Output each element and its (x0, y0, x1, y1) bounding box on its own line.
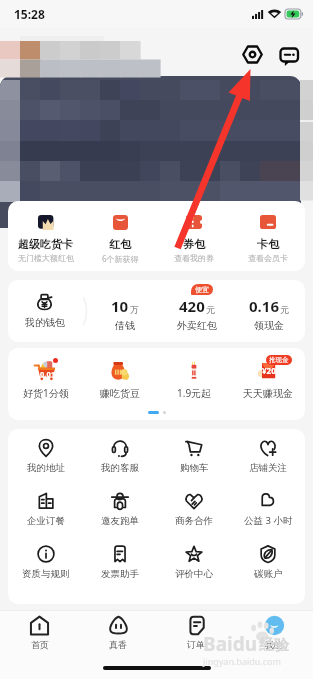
staticText: 券包 (183, 237, 205, 251)
button[interactable]: 店铺关注 (231, 429, 305, 482)
staticText: 420 (179, 296, 205, 316)
button[interactable]: 资质与规则 (8, 535, 83, 588)
staticText: 发票助手 (101, 568, 139, 580)
staticText: 0.01 (40, 369, 55, 379)
staticText: Baidu (203, 631, 258, 657)
staticText: 好货1分领 (23, 386, 69, 400)
staticText: 0.16 (249, 296, 279, 316)
button[interactable]: 购物车 (157, 429, 231, 482)
button[interactable]: 红包 (83, 201, 157, 271)
button[interactable]: 卡包 (231, 201, 305, 271)
button[interactable]: 碳账户 (231, 535, 305, 588)
staticText: 经验 (259, 636, 289, 655)
staticText: 我的 (265, 639, 283, 650)
staticText: 超级吃货卡 (18, 237, 73, 251)
staticText: jingyan.baidu.com (203, 655, 281, 667)
button[interactable]: 券包 (157, 201, 231, 271)
staticText: 元 (206, 304, 215, 315)
staticText: 天天赚现金 (243, 387, 293, 400)
staticText: 企业订餐 (27, 515, 65, 527)
button[interactable]: 我的地址 (8, 429, 83, 482)
staticText: 无门槛大额红包 (18, 253, 74, 263)
staticText: 我的客服 (101, 462, 139, 474)
staticText: 订单 (187, 639, 205, 650)
staticText: 首页 (31, 639, 49, 650)
staticText: 元 (280, 304, 289, 315)
button[interactable]: 超级吃货卡 (8, 201, 83, 271)
button[interactable]: 我的客服 (83, 429, 157, 482)
button[interactable]: 商务合作 (157, 482, 231, 535)
staticText: 6个新获得 (102, 253, 139, 264)
staticText: 卡包 (257, 237, 279, 251)
staticText: 店铺关注 (249, 462, 287, 474)
button[interactable]: Messages (277, 42, 302, 67)
button[interactable]: 首页 (0, 611, 79, 654)
button[interactable]: 420 (161, 280, 233, 342)
staticText: 评价中心 (175, 568, 213, 580)
button[interactable]: 1.9元起 (157, 348, 231, 404)
staticText: 赚吃货豆 (100, 387, 140, 400)
button[interactable]: 评价中心 (157, 535, 231, 588)
button[interactable]: 订单 (157, 611, 235, 654)
button[interactable]: 我的 (235, 611, 313, 654)
button[interactable]: 赚吃货豆 (83, 348, 157, 404)
staticText: 我的地址 (27, 462, 65, 474)
button[interactable]: 邀友跑单 (83, 482, 157, 535)
staticText: 我的钱包 (25, 316, 65, 329)
staticText: 便宜 (195, 285, 209, 294)
staticText: 查看我的券 (174, 253, 214, 263)
staticText: 真香 (109, 639, 127, 650)
button[interactable]: 发票助手 (83, 535, 157, 588)
staticText: 邀友跑单 (101, 515, 139, 527)
staticText: 购物车 (180, 462, 209, 474)
staticText: 抢现金 (269, 356, 289, 364)
button[interactable]: 公益 3 小时 (231, 482, 305, 535)
button[interactable]: 我的钱包 (8, 280, 81, 342)
button[interactable]: Settings (240, 42, 265, 67)
staticText: 15:28 (14, 6, 45, 22)
button[interactable]: 0.01 (8, 348, 83, 404)
staticText: ¥20 (262, 365, 276, 376)
staticText: 资质与规则 (22, 568, 70, 580)
staticText: 借钱 (115, 319, 135, 332)
staticText: 红包 (109, 237, 131, 251)
staticText: 外卖红包 (177, 319, 217, 332)
button[interactable]: 0.16 (233, 280, 305, 342)
staticText: 万 (130, 304, 139, 315)
staticText: 查看会员卡 (248, 253, 288, 263)
staticText: 碳账户 (254, 568, 283, 580)
staticText: 商务合作 (175, 515, 213, 527)
staticText: 1.9元起 (177, 386, 212, 400)
staticText: 领现金 (254, 319, 284, 332)
button[interactable]: 真香 (79, 611, 157, 654)
staticText: 公益 3 小时 (244, 514, 293, 527)
button[interactable]: ¥20 (231, 348, 305, 404)
button[interactable]: 企业订餐 (8, 482, 83, 535)
staticText: 10 (111, 296, 129, 316)
button[interactable]: 10 (89, 280, 161, 342)
